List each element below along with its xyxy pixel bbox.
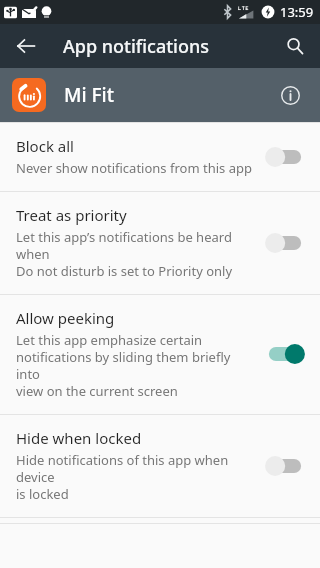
button[interactable]: Allow peeking [0, 295, 320, 414]
staticText: Never show notifications from this app [16, 159, 252, 177]
staticText: Block all [16, 136, 74, 156]
button[interactable]: Hide when locked [0, 415, 320, 517]
staticText: 13:59 [280, 3, 314, 21]
staticText: Treat as priority [16, 205, 127, 225]
button[interactable]: Search [273, 24, 317, 68]
button[interactable]: Off [262, 228, 308, 258]
button[interactable]: On [262, 339, 308, 369]
button[interactable]: Back [4, 24, 48, 68]
button[interactable]: Treat as priority [0, 192, 320, 294]
button[interactable]: Off [262, 142, 308, 172]
staticText: App notifications [63, 34, 210, 59]
staticText: Let this app’s notifications be heard wh… [16, 228, 254, 280]
staticText: Mi Fit [64, 82, 114, 108]
button[interactable]: Block all [0, 123, 320, 191]
button[interactable]: Off [262, 451, 308, 481]
staticText: Hide notifications of this app when devi… [16, 451, 254, 503]
staticText: Hide when locked [16, 428, 142, 448]
button[interactable]: App info [272, 77, 308, 113]
button[interactable]: Mi Fit [0, 68, 320, 122]
staticText: Let this app emphasize certain notificat… [16, 331, 254, 400]
staticText: Allow peeking [16, 308, 115, 328]
